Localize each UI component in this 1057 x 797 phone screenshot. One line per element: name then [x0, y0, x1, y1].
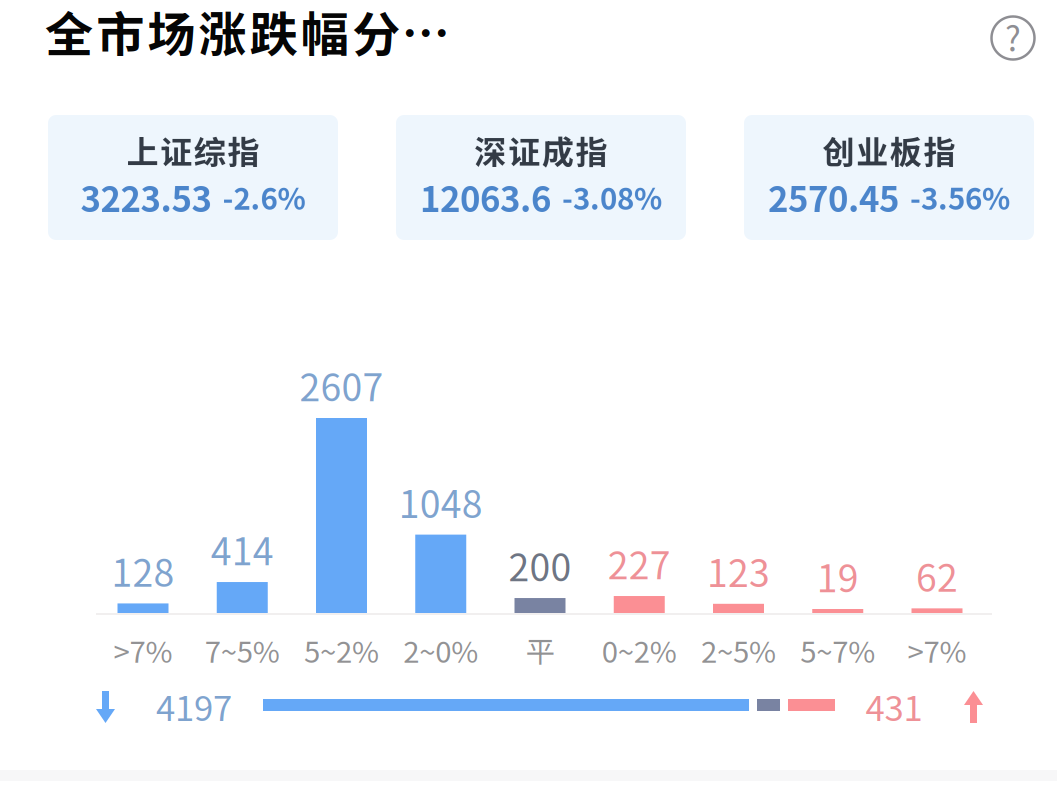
staticText: 平 [525, 629, 554, 671]
button[interactable]: 227 [590, 365, 689, 665]
staticText: 5~7% [800, 629, 875, 671]
staticText: 上证综指 [127, 127, 259, 173]
staticText: 3223.53 [80, 172, 211, 222]
staticText: ? [1005, 13, 1021, 61]
staticText: 227 [608, 536, 671, 590]
button[interactable]: 深证成指 [396, 115, 686, 240]
staticText: 2~0% [403, 629, 478, 671]
button[interactable]: 200 [490, 365, 589, 665]
button[interactable]: 创业板指 [744, 115, 1034, 240]
staticText: 2~5% [701, 629, 776, 671]
staticText: 62 [916, 548, 958, 602]
staticText: 12063.6 [420, 172, 551, 222]
staticText: 深证成指 [475, 127, 607, 173]
staticText: 19 [817, 549, 859, 603]
staticText: 全市场涨跌幅分布 [45, 0, 451, 66]
button[interactable]: 414 [193, 365, 292, 665]
staticText: 创业板指 [823, 127, 955, 173]
staticText: 2607 [299, 358, 383, 412]
button[interactable]: Help [986, 11, 1040, 65]
button[interactable]: 123 [689, 365, 788, 665]
staticText: >7% [113, 629, 172, 671]
staticText: 128 [111, 543, 174, 597]
staticText: 7~5% [205, 629, 280, 671]
staticText: 123 [707, 544, 770, 598]
button[interactable]: 128 [93, 365, 192, 665]
staticText: 0~2% [602, 629, 677, 671]
staticText: 2570.45 [768, 172, 899, 222]
staticText: 5~2% [304, 629, 379, 671]
button[interactable]: 19 [788, 365, 887, 665]
staticText: 431 [865, 681, 922, 731]
staticText: -3.08% [562, 176, 662, 218]
button[interactable]: 2607 [292, 365, 391, 665]
staticText: 1048 [399, 475, 483, 529]
staticText: 200 [508, 538, 571, 592]
staticText: -3.56% [910, 176, 1010, 218]
staticText: 414 [211, 522, 274, 576]
button[interactable]: 上证综指 [48, 115, 338, 240]
button[interactable]: 1048 [391, 365, 490, 665]
staticText: -2.6% [222, 176, 305, 218]
staticText: >7% [907, 629, 966, 671]
staticText: 4197 [156, 681, 232, 731]
button[interactable]: 62 [887, 365, 986, 665]
